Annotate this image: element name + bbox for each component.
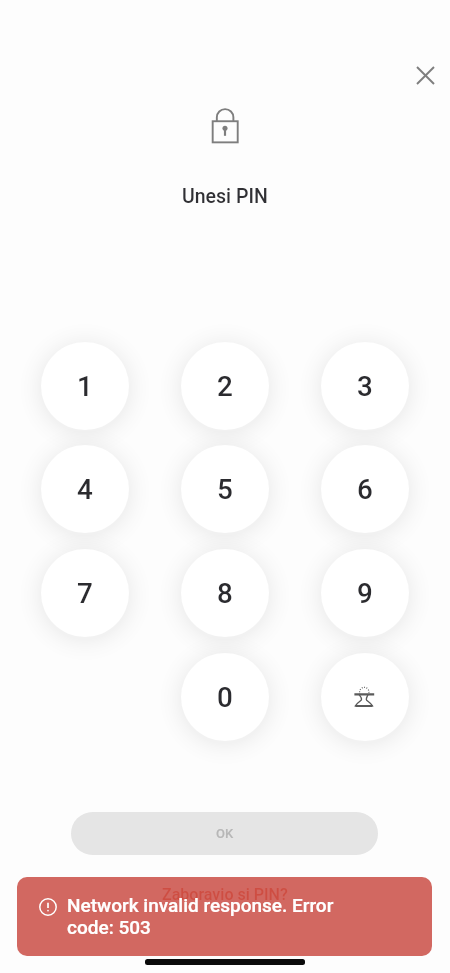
other: Unlock with fingerprint [353,685,377,709]
button[interactable]: 4 [41,445,129,533]
button[interactable]: 7 [41,549,129,637]
button[interactable]: 6 [321,445,409,533]
staticText: 5 [217,473,233,506]
button[interactable]: 8 [181,549,269,637]
staticText: 8 [217,577,233,610]
button[interactable]: 3 [321,342,409,430]
staticText: 1 [77,370,93,403]
staticText: 0 [217,681,233,714]
staticText: 7 [77,577,93,610]
staticText: Network invalid response. Error code: 50… [67,894,352,938]
staticText: 2 [217,370,233,403]
button[interactable]: Unlock with fingerprint [321,653,409,741]
staticText: Unesi PIN [182,185,268,208]
staticText: OK [216,826,234,841]
staticText: 6 [357,473,373,506]
staticText: 4 [77,473,93,506]
button[interactable]: 5 [181,445,269,533]
button[interactable]: Zaboravio si PIN? [162,885,288,904]
staticText: 9 [357,577,373,610]
button[interactable]: 2 [181,342,269,430]
button[interactable]: 0 [181,653,269,741]
staticText: 3 [357,370,373,403]
button[interactable]: Close [403,53,447,97]
button[interactable]: OK [71,812,378,855]
button[interactable]: 1 [41,342,129,430]
button[interactable]: 9 [321,549,409,637]
staticText: Zaboravio si PIN? [162,885,288,904]
